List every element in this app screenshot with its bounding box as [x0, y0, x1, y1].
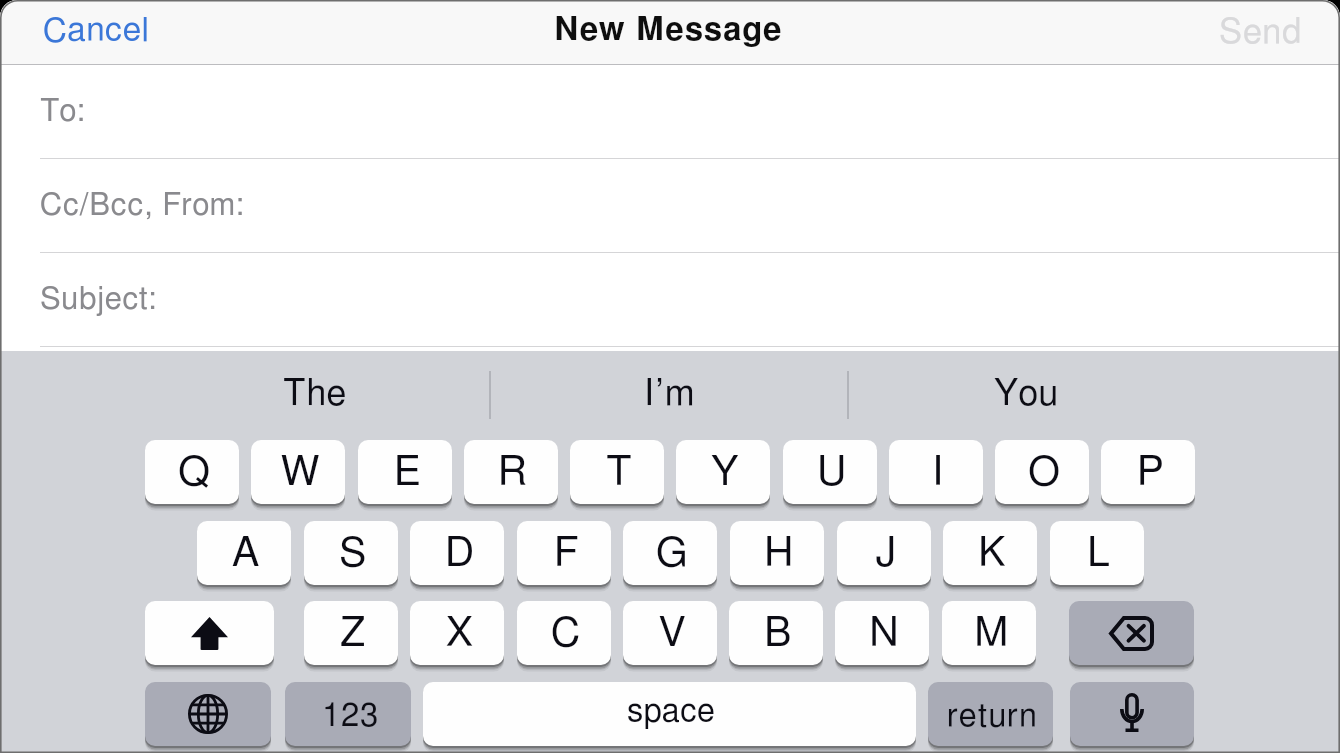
staticText: A — [232, 533, 260, 574]
button[interactable]: F — [517, 521, 611, 585]
staticText: B — [764, 613, 792, 654]
button[interactable]: Send — [1204, 9, 1320, 56]
button[interactable]: X — [410, 601, 504, 665]
button[interactable]: space — [423, 682, 916, 746]
button[interactable]: To: — [0, 65, 1340, 159]
staticText: You — [994, 376, 1059, 412]
staticText: R — [498, 452, 528, 493]
staticText: O — [1028, 452, 1061, 493]
button[interactable]: J — [837, 521, 931, 585]
button[interactable]: E — [358, 440, 452, 504]
staticText: C — [551, 613, 581, 654]
button[interactable]: Y — [676, 440, 770, 504]
staticText: W — [281, 452, 320, 493]
button[interactable]: Shift — [145, 601, 274, 665]
staticText: G — [656, 533, 688, 574]
button[interactable]: M — [942, 601, 1036, 665]
staticText: To: — [40, 96, 86, 127]
staticText: Cc/Bcc, From: — [40, 190, 245, 221]
staticText: E — [394, 452, 420, 493]
staticText: X — [446, 613, 473, 654]
staticText: P — [1137, 452, 1164, 493]
button[interactable]: O — [995, 440, 1089, 504]
staticText: V — [659, 613, 686, 654]
staticText: The — [283, 376, 347, 412]
button[interactable]: return — [928, 682, 1053, 746]
staticText: D — [445, 533, 474, 574]
button[interactable]: I’m — [492, 351, 848, 439]
button[interactable]: Delete — [1069, 601, 1194, 665]
button[interactable]: Subject: — [0, 253, 1340, 347]
button[interactable]: Z — [304, 601, 398, 665]
button[interactable]: D — [410, 521, 504, 585]
button[interactable]: Dictate — [1070, 682, 1194, 746]
staticText: Subject: — [40, 284, 158, 315]
staticText: return — [947, 701, 1039, 734]
button[interactable]: 123 — [285, 682, 411, 746]
button[interactable]: R — [464, 440, 558, 504]
staticText: J — [875, 533, 897, 574]
button[interactable]: You — [848, 351, 1204, 439]
button[interactable]: Next keyboard — [145, 682, 271, 746]
staticText: U — [817, 452, 847, 493]
button[interactable]: S — [304, 521, 398, 585]
staticText: T — [606, 452, 632, 493]
button[interactable]: W — [251, 440, 345, 504]
button[interactable]: C — [517, 601, 611, 665]
staticText: N — [869, 613, 899, 654]
staticText: K — [978, 533, 1006, 574]
button[interactable]: H — [730, 521, 824, 585]
staticText: H — [764, 533, 794, 574]
button[interactable]: T — [570, 440, 664, 504]
button[interactable]: L — [1050, 521, 1144, 585]
staticText: Cancel — [43, 14, 150, 48]
staticText: space — [627, 696, 716, 729]
button[interactable]: A — [197, 521, 291, 585]
button[interactable]: G — [623, 521, 717, 585]
button[interactable]: Cc/Bcc, From: — [0, 159, 1340, 253]
button[interactable]: B — [729, 601, 823, 665]
staticText: Y — [711, 452, 739, 493]
button[interactable]: N — [835, 601, 929, 665]
staticText: S — [339, 533, 367, 574]
button[interactable]: V — [623, 601, 717, 665]
button[interactable]: Cancel — [27, 10, 166, 56]
button[interactable]: The — [137, 351, 493, 439]
staticText: F — [554, 533, 579, 574]
staticText: I’m — [644, 376, 696, 412]
button[interactable]: U — [783, 440, 877, 504]
staticText: Q — [178, 452, 211, 493]
staticText: M — [974, 613, 1009, 654]
button[interactable]: P — [1101, 440, 1195, 504]
staticText: L — [1087, 533, 1111, 574]
staticText: Send — [1219, 15, 1303, 50]
staticText: 123 — [322, 700, 379, 733]
staticText: I — [932, 452, 944, 493]
button[interactable]: Q — [145, 440, 239, 504]
button[interactable]: I — [889, 440, 983, 504]
staticText: New Message — [554, 14, 783, 47]
staticText: Z — [340, 613, 366, 654]
button[interactable]: K — [943, 521, 1037, 585]
